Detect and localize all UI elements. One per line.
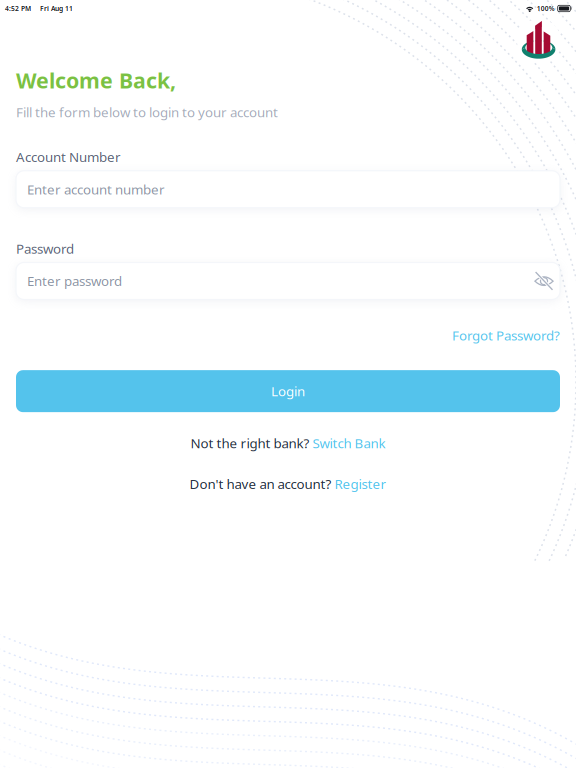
staticText: Don't have an account? <box>189 475 334 493</box>
staticText: Enter account number <box>27 180 165 198</box>
staticText: Not the right bank? <box>190 434 312 452</box>
staticText: Enter password <box>27 272 122 290</box>
staticText: 100% <box>537 4 555 13</box>
button[interactable]: Switch Bank <box>312 434 385 452</box>
staticText: Fri Aug 11 <box>40 4 73 13</box>
button[interactable]: Login <box>16 370 560 412</box>
staticText: Register <box>334 475 386 493</box>
staticText: Forgot Password? <box>452 326 560 344</box>
staticText: Switch Bank <box>312 434 385 452</box>
staticText: Welcome Back, <box>16 66 176 94</box>
staticText: Fill the form below to login to your acc… <box>16 103 278 121</box>
staticText: 4:52 PM <box>5 4 31 13</box>
button[interactable]: Forgot Password? <box>452 326 560 344</box>
staticText: Password <box>16 240 74 257</box>
staticText: Login <box>271 382 305 400</box>
button[interactable]: Register <box>334 475 386 493</box>
button[interactable]: Show password <box>526 263 554 299</box>
staticText: Account Number <box>16 148 121 166</box>
